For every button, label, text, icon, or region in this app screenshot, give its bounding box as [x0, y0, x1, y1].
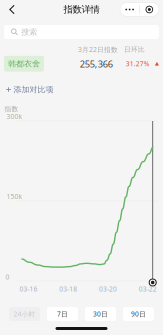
button[interactable]: 90日 [123, 307, 154, 321]
button[interactable]: 24小时 [9, 307, 40, 321]
staticText: 03-18 [59, 285, 77, 293]
staticText: 150k [6, 192, 22, 201]
staticText: 31.27% [126, 59, 150, 68]
staticText: 日环比 [124, 45, 145, 53]
button[interactable]: 添加对比项 [0, 85, 163, 94]
button[interactable]: More options [120, 2, 159, 16]
staticText: 指数详情 [63, 4, 99, 15]
button[interactable]: Back [2, 0, 22, 19]
staticText: 255,366 [80, 58, 113, 70]
staticText: 添加对比项 [14, 85, 54, 94]
button[interactable]: 搜索 [0, 25, 163, 39]
staticText: 03-22 [139, 285, 157, 293]
staticText: 搜索 [21, 27, 37, 37]
button[interactable]: 7日 [47, 307, 78, 321]
staticText: 0 [5, 273, 9, 281]
staticText: 03-20 [99, 285, 117, 293]
staticText: 300k [6, 112, 22, 121]
staticText: 指数 [4, 105, 18, 113]
staticText: 90日 [131, 310, 146, 318]
staticText: 03-16 [19, 285, 37, 293]
staticText: 24小时 [13, 310, 35, 318]
staticText: 7日 [57, 310, 68, 318]
button[interactable]: 30日 [85, 307, 116, 321]
staticText: 3月22日指数 [78, 45, 118, 54]
staticText: 30日 [93, 310, 108, 318]
staticText: 韩都衣舍 [8, 59, 40, 69]
